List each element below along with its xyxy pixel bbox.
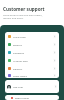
other: Support agent bbox=[7, 85, 11, 89]
button[interactable]: Track order bbox=[5, 32, 59, 40]
staticText: Returns bbox=[13, 43, 22, 46]
staticText: Report issue bbox=[15, 96, 29, 99]
staticText: Customer support bbox=[3, 6, 45, 12]
button[interactable]: Support agent bbox=[5, 80, 59, 93]
button[interactable]: Account help bbox=[5, 56, 59, 64]
button[interactable]: Report issue bbox=[5, 95, 59, 100]
staticText: Delivery bbox=[13, 67, 23, 70]
button[interactable]: Payments bbox=[5, 48, 59, 56]
staticText: Live chat bbox=[13, 85, 23, 88]
staticText: Account help bbox=[13, 59, 28, 62]
button[interactable]: Other topics bbox=[5, 72, 59, 78]
staticText: Payments bbox=[13, 51, 25, 54]
staticText: Track order bbox=[13, 35, 26, 38]
button[interactable]: Delivery bbox=[5, 64, 59, 72]
staticText: We're here to help you with orders, bbox=[3, 13, 43, 16]
staticText: Other topics bbox=[13, 74, 27, 77]
button[interactable]: Returns bbox=[5, 40, 59, 48]
staticText: returns and more. bbox=[3, 16, 24, 19]
